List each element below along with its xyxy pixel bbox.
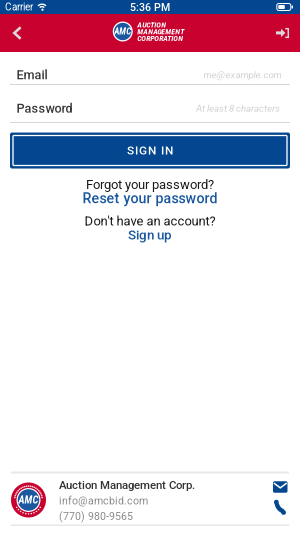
staticText: At least 8 characters <box>196 103 280 114</box>
button[interactable]: SIGN IN <box>10 132 290 168</box>
staticText: AMC <box>18 494 38 506</box>
staticText: 5:36 PM <box>130 1 170 14</box>
staticText: Forgot your password? <box>86 177 214 192</box>
staticText: me@example.com <box>203 69 281 81</box>
button[interactable]: Sign up <box>128 228 172 242</box>
button[interactable]: Email AMC <box>273 481 287 493</box>
staticText: Sign up <box>128 227 172 243</box>
staticText: Auction Management Corp. <box>59 478 195 492</box>
staticText: Carrier <box>5 1 33 13</box>
staticText: (770) 980-9565 <box>59 510 133 523</box>
staticText: Password <box>16 101 72 116</box>
staticText: info@amcbid.com <box>59 495 148 507</box>
button[interactable]: Reset your password <box>82 191 217 205</box>
staticText: Don't have an account? <box>84 213 215 229</box>
button[interactable]: Call AMC <box>274 500 287 515</box>
staticText: AUCTION MANAGEMENT CORPORATION <box>137 21 184 42</box>
button[interactable]: Back <box>0 14 22 52</box>
staticText: SIGN IN <box>127 144 173 157</box>
staticText: AMC <box>114 26 131 37</box>
button[interactable]: Sign in <box>276 15 300 51</box>
staticText: Email <box>16 68 47 82</box>
staticText: Reset your password <box>82 190 217 207</box>
